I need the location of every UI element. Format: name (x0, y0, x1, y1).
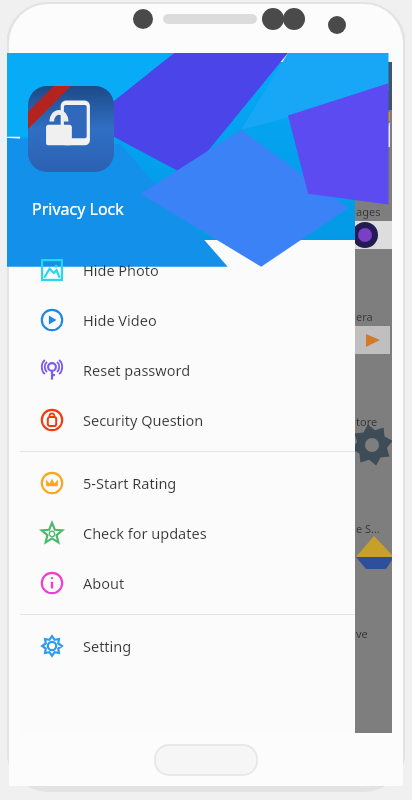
button[interactable]: Setting (20, 621, 355, 671)
staticText: ages (356, 204, 381, 219)
staticText: era (356, 309, 373, 324)
other: Privacy Lock app icon (28, 86, 114, 172)
button[interactable]: Check for updates (20, 508, 355, 558)
button[interactable]: Hide Video (20, 295, 355, 345)
staticText: Security Question (83, 410, 204, 430)
staticText: Hide Video (83, 310, 157, 330)
button[interactable]: 5-Start Rating (20, 458, 355, 508)
staticText: 5-Start Rating (83, 473, 177, 493)
staticText: Reset password (83, 360, 191, 380)
staticText: e S… (356, 521, 380, 536)
staticText: About (83, 573, 125, 593)
staticText: Hide Photo (83, 260, 159, 280)
button[interactable]: About (20, 558, 355, 608)
staticText: Setting (83, 636, 132, 656)
staticText: ve (356, 626, 368, 641)
staticText: Check for updates (83, 523, 207, 543)
staticText: tore (356, 414, 378, 429)
button[interactable]: Reset password (20, 345, 355, 395)
button[interactable]: Security Question (20, 395, 355, 445)
staticText: Privacy Lock (32, 198, 124, 220)
button[interactable]: Hide Photo (20, 245, 355, 295)
